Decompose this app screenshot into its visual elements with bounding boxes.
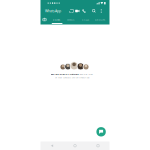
staticText: and Get Free — [78, 72, 92, 76]
button[interactable]: STATUS — [63, 16, 77, 23]
button[interactable]: Camera — [39, 16, 50, 23]
button[interactable]: Video call — [74, 8, 80, 14]
button[interactable]: Calls — [81, 8, 87, 14]
staticText: GROUPS — [95, 18, 105, 21]
staticText: WhatsApp — [45, 9, 61, 13]
staticText: STATUS — [67, 18, 74, 21]
staticText: CALLS — [82, 18, 89, 21]
button[interactable]: Back — [40, 141, 63, 150]
button[interactable]: Search — [91, 8, 97, 14]
button[interactable]: New chat — [96, 127, 106, 136]
button[interactable]: Cast screen — [68, 8, 74, 14]
button[interactable]: GROUPS — [93, 16, 107, 23]
button[interactable]: More options — [99, 8, 104, 14]
staticText: CHATS — [53, 18, 60, 21]
staticText: Explore Friends Network — [50, 72, 78, 76]
button[interactable]: CHATS — [49, 16, 63, 23]
staticText: of your contacts are on WhatsApp — [55, 76, 89, 79]
button[interactable]: Recent apps — [86, 141, 109, 150]
button[interactable]: CALLS — [78, 16, 92, 23]
button[interactable]: Home — [63, 141, 86, 150]
